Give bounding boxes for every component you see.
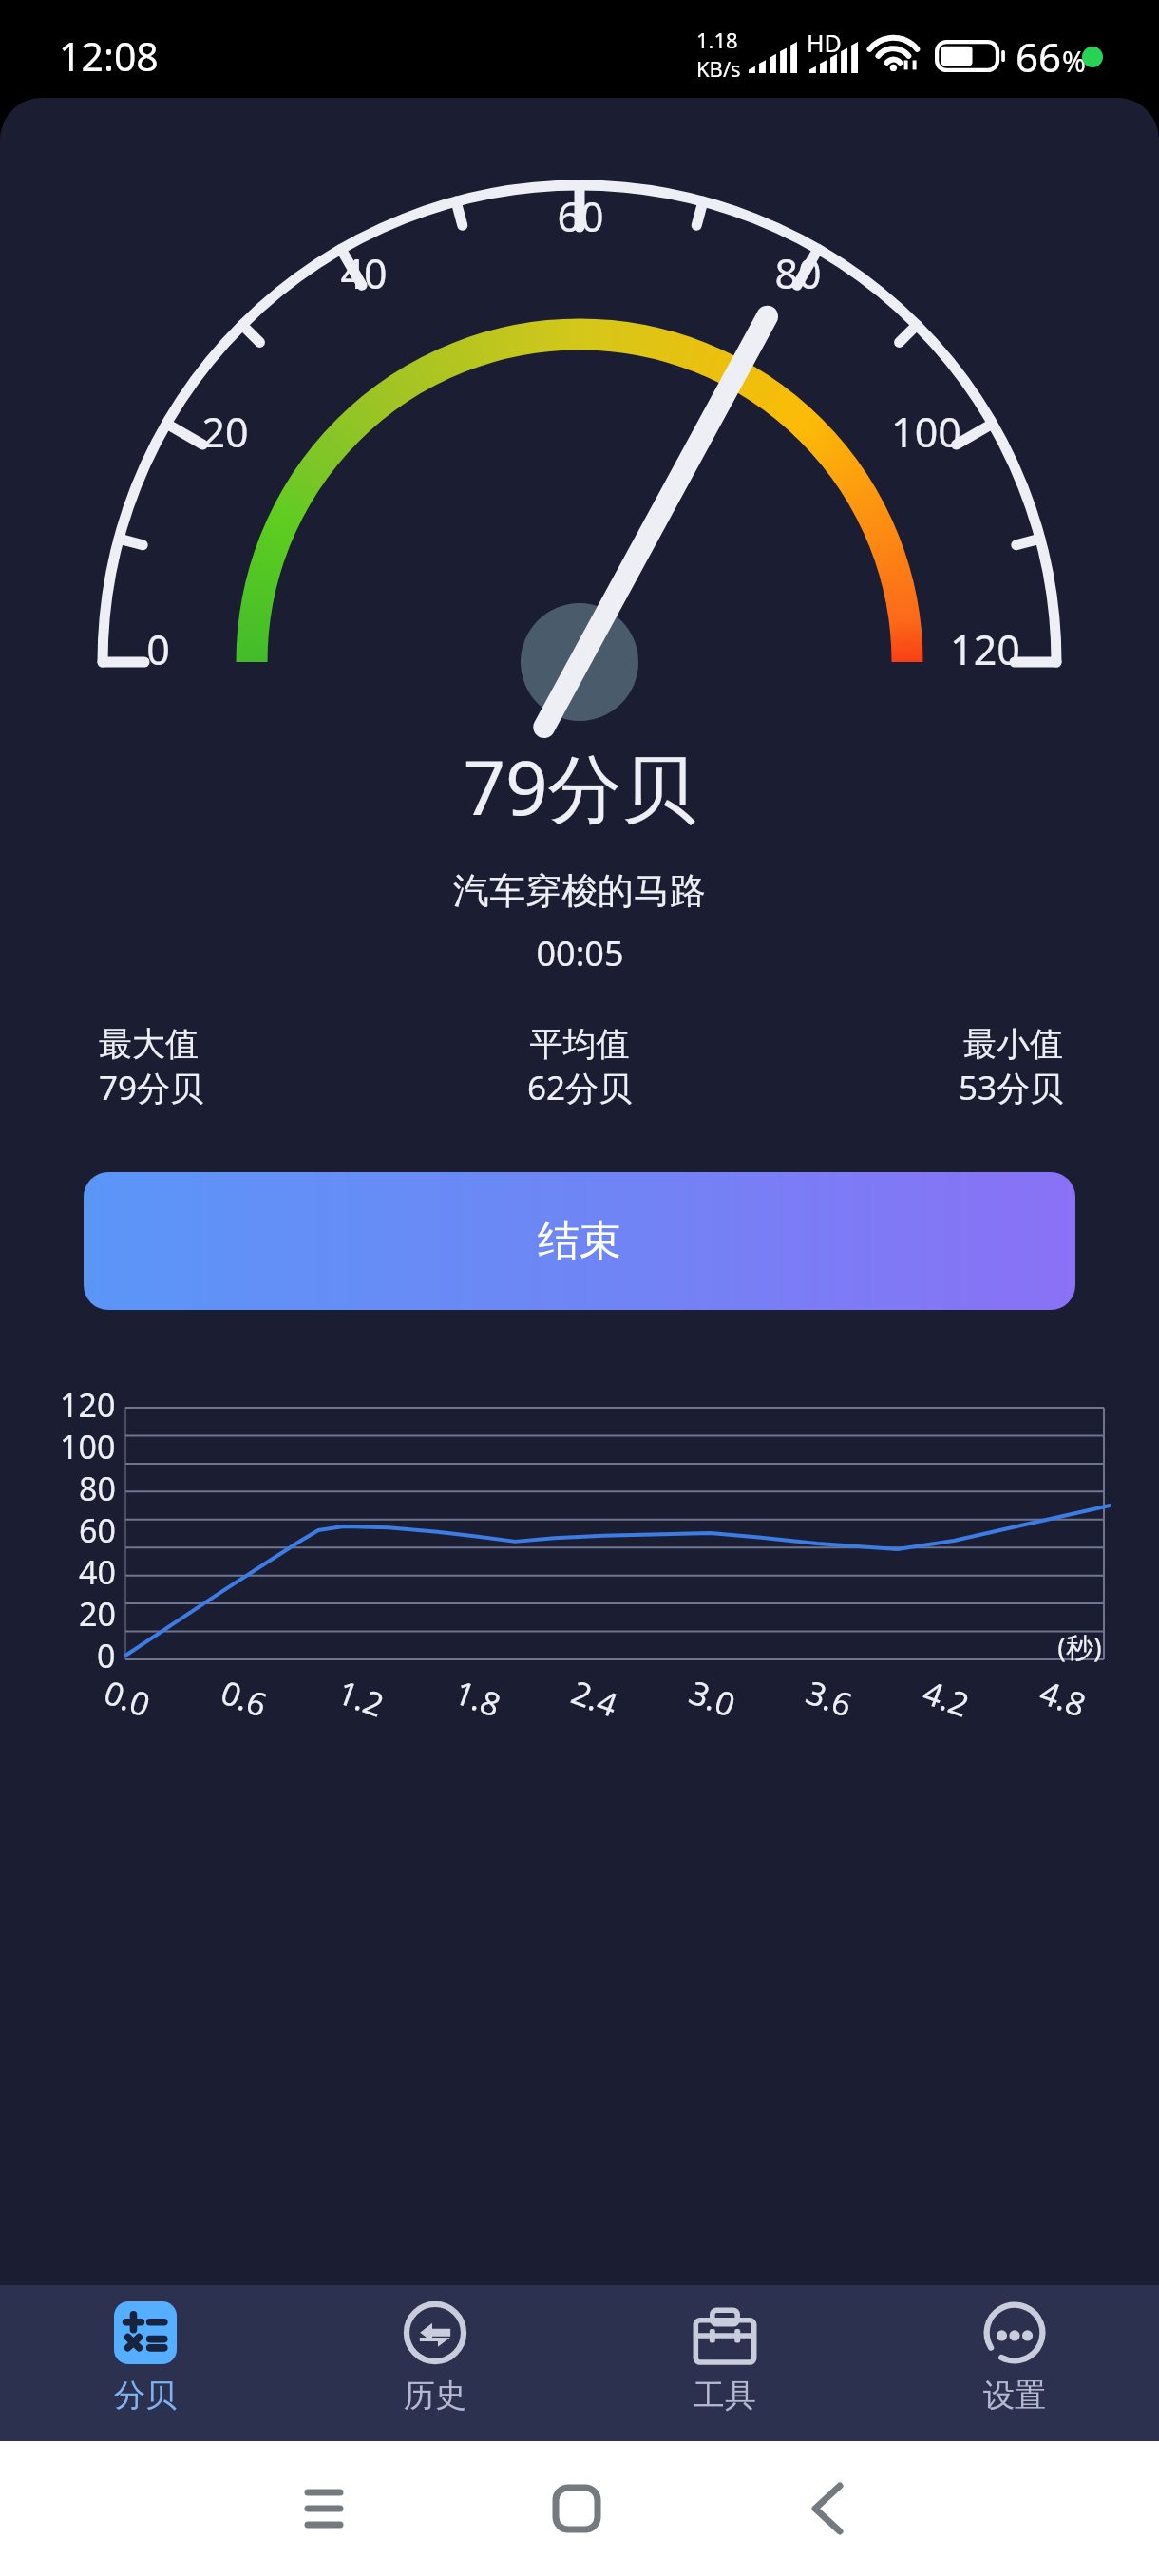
staticText: 60 <box>79 1508 116 1552</box>
staticText: HD <box>807 27 842 59</box>
staticText: 0 <box>97 1634 116 1677</box>
staticText: 80 <box>79 1467 116 1510</box>
staticText: 3.6 <box>800 1670 859 1727</box>
staticText: 0 <box>146 621 170 677</box>
staticText: KB/s <box>696 54 741 83</box>
staticText: 1.8 <box>449 1670 508 1727</box>
staticText: 0.6 <box>215 1670 274 1727</box>
staticText: 平均值 <box>437 1023 722 1065</box>
staticText: 汽车穿梭的马路 <box>453 868 706 914</box>
staticText: 分贝 <box>114 2376 177 2415</box>
staticText: 120 <box>950 621 1020 677</box>
staticText: 40 <box>79 1550 116 1594</box>
staticText: 结束 <box>538 1215 621 1267</box>
staticText: 20 <box>79 1592 116 1636</box>
button[interactable]: 结束 <box>84 1172 1075 1310</box>
staticText: 00:05 <box>536 930 624 976</box>
button[interactable]: Home <box>526 2441 621 2532</box>
staticText: 历史 <box>404 2376 466 2415</box>
staticText: 0.0 <box>98 1670 157 1727</box>
staticText: 66 <box>1016 29 1062 84</box>
staticText: 100 <box>891 404 961 460</box>
staticText: 62分贝 <box>437 1065 722 1110</box>
staticText: 1.2 <box>332 1670 391 1727</box>
staticText: 40 <box>340 245 388 301</box>
staticText: 79分贝 <box>463 736 696 838</box>
staticText: 2.4 <box>566 1670 625 1727</box>
staticText: 100 <box>60 1425 116 1468</box>
staticText: 最大值 <box>99 1023 384 1065</box>
staticText: 80 <box>774 245 822 301</box>
button[interactable]: 设置 <box>869 2285 1159 2441</box>
staticText: 最小值 <box>778 1023 1063 1065</box>
staticText: 工具 <box>693 2376 756 2415</box>
button[interactable]: 分贝 <box>0 2285 290 2441</box>
staticText: 设置 <box>983 2376 1046 2415</box>
staticText: 53分贝 <box>778 1065 1063 1110</box>
staticText: 4.2 <box>917 1670 976 1727</box>
staticText: (秒) <box>1057 1628 1102 1666</box>
staticText: 20 <box>201 404 249 460</box>
staticText: 3.0 <box>684 1670 742 1727</box>
button[interactable]: 工具 <box>579 2285 869 2441</box>
staticText: % <box>1062 42 1086 81</box>
staticText: 12:08 <box>59 29 159 83</box>
staticText: 4.8 <box>1034 1670 1093 1727</box>
button[interactable]: Recent apps <box>275 2441 370 2532</box>
staticText: 79分贝 <box>99 1065 384 1110</box>
button[interactable]: 历史 <box>290 2285 579 2441</box>
button[interactable]: Back <box>779 2441 874 2532</box>
staticText: 120 <box>60 1383 116 1427</box>
staticText: 1.18 <box>696 26 738 54</box>
staticText: 60 <box>557 188 604 244</box>
